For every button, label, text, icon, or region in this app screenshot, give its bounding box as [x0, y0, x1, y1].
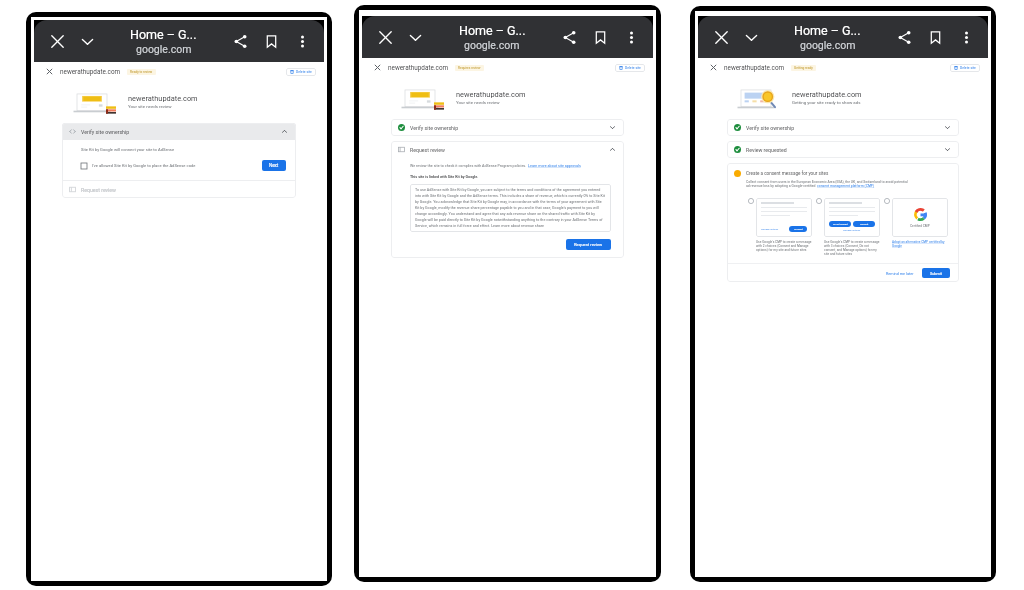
staticText: newerathupdate.com — [724, 64, 785, 72]
staticText: google.com — [136, 43, 192, 55]
button[interactable]: Close — [373, 63, 382, 72]
button[interactable]: Delete site — [286, 68, 316, 76]
button[interactable]: Review requested — [727, 141, 959, 158]
staticText: Consent — [860, 223, 869, 226]
button[interactable]: More options — [620, 26, 642, 48]
staticText: Do not consent — [833, 223, 848, 226]
button[interactable]: Collapse — [76, 30, 98, 52]
staticText: google.com — [464, 39, 520, 51]
staticText: This site is linked with Site Kit by Goo… — [410, 175, 479, 179]
staticText: Home – G... — [130, 27, 197, 42]
staticText: Home – G... — [794, 23, 861, 38]
button[interactable]: Verify site ownership — [391, 119, 624, 136]
staticText: Adopt an alternative CMP certified by Go… — [892, 240, 948, 248]
staticText: I've allowed Site Kit by Google to place… — [92, 163, 196, 168]
staticText: Home – G... — [459, 23, 526, 38]
staticText: newerathupdate.com — [456, 90, 526, 99]
button[interactable]: Close — [45, 67, 54, 76]
staticText: Getting ready — [794, 66, 813, 70]
button[interactable]: Verify site ownership — [62, 123, 296, 140]
staticText: Remind me later — [886, 271, 914, 275]
button[interactable]: Request review — [566, 239, 611, 250]
staticText: newerathupdate.com — [128, 94, 198, 103]
button[interactable]: Close — [46, 30, 68, 52]
staticText: Create a consent message for your sites — [746, 171, 829, 176]
button[interactable]: Remind me later — [882, 269, 918, 277]
button[interactable]: Collapse — [404, 26, 426, 48]
staticText: Submit — [930, 271, 942, 275]
button[interactable]: Share — [893, 26, 915, 48]
staticText: Learn more about site approvals — [528, 164, 581, 168]
staticText: google.com — [800, 39, 856, 51]
button[interactable]: Bookmark — [589, 26, 611, 48]
button[interactable]: Share — [558, 26, 580, 48]
button[interactable]: More options — [955, 26, 977, 48]
staticText: Your site needs review — [456, 100, 500, 105]
button[interactable]: Next — [262, 160, 286, 171]
button[interactable]: Bookmark — [924, 26, 946, 48]
staticText: Request review — [81, 187, 117, 193]
button[interactable]: Delete site — [950, 64, 980, 72]
staticText: We review the site to check it complies … — [410, 164, 528, 168]
button[interactable]: Close — [374, 26, 396, 48]
staticText: Your site needs review — [128, 104, 172, 109]
staticText: ad revenue loss by adopting a Google-cer… — [746, 184, 817, 188]
staticText: Manage options — [843, 229, 861, 232]
staticText: newerathupdate.com — [388, 64, 449, 72]
staticText: Review requested — [746, 147, 787, 153]
button[interactable]: Request review — [391, 141, 624, 158]
button[interactable]: Close — [709, 63, 718, 72]
staticText: Ready to review — [130, 70, 153, 74]
button[interactable]: Submit — [922, 268, 950, 278]
staticText: Use Google's CMP to create a message wit… — [824, 240, 880, 256]
button[interactable]: Share — [229, 30, 251, 52]
staticText: newerathupdate.com — [60, 68, 121, 76]
staticText: Manage options — [761, 228, 779, 231]
staticText: Verify site ownership — [410, 125, 459, 131]
staticText: To use AdSense with Site Kit by Google, … — [415, 188, 606, 228]
staticText: Next — [269, 163, 279, 168]
button[interactable]: Delete site — [615, 64, 645, 72]
button[interactable]: Verify site ownership — [727, 119, 959, 136]
staticText: Collect consent from users in the Europe… — [746, 180, 909, 184]
button[interactable]: More options — [291, 30, 313, 52]
button[interactable]: Close — [710, 26, 732, 48]
staticText: Delete site — [625, 66, 641, 70]
staticText: Requires review — [458, 66, 481, 70]
button[interactable]: Bookmark — [260, 30, 282, 52]
button[interactable]: Request review — [62, 181, 296, 198]
staticText: consent management platform (CMP) — [817, 184, 875, 188]
staticText: Request review — [410, 147, 446, 153]
staticText: Getting your site ready to show ads — [792, 100, 861, 105]
staticText: Request review — [574, 242, 603, 247]
button[interactable]: Collapse — [740, 26, 762, 48]
staticText: Delete site — [960, 66, 976, 70]
staticText: Site Kit by Google will connect your sit… — [81, 147, 175, 152]
staticText: Use Google's CMP to create a message wit… — [756, 240, 812, 252]
staticText: Delete site — [296, 70, 312, 74]
staticText: newerathupdate.com — [792, 90, 862, 99]
staticText: Certified CMP — [910, 224, 930, 228]
staticText: Verify site ownership — [746, 125, 795, 131]
staticText: Consent — [794, 228, 803, 231]
staticText: Verify site ownership — [81, 129, 130, 135]
